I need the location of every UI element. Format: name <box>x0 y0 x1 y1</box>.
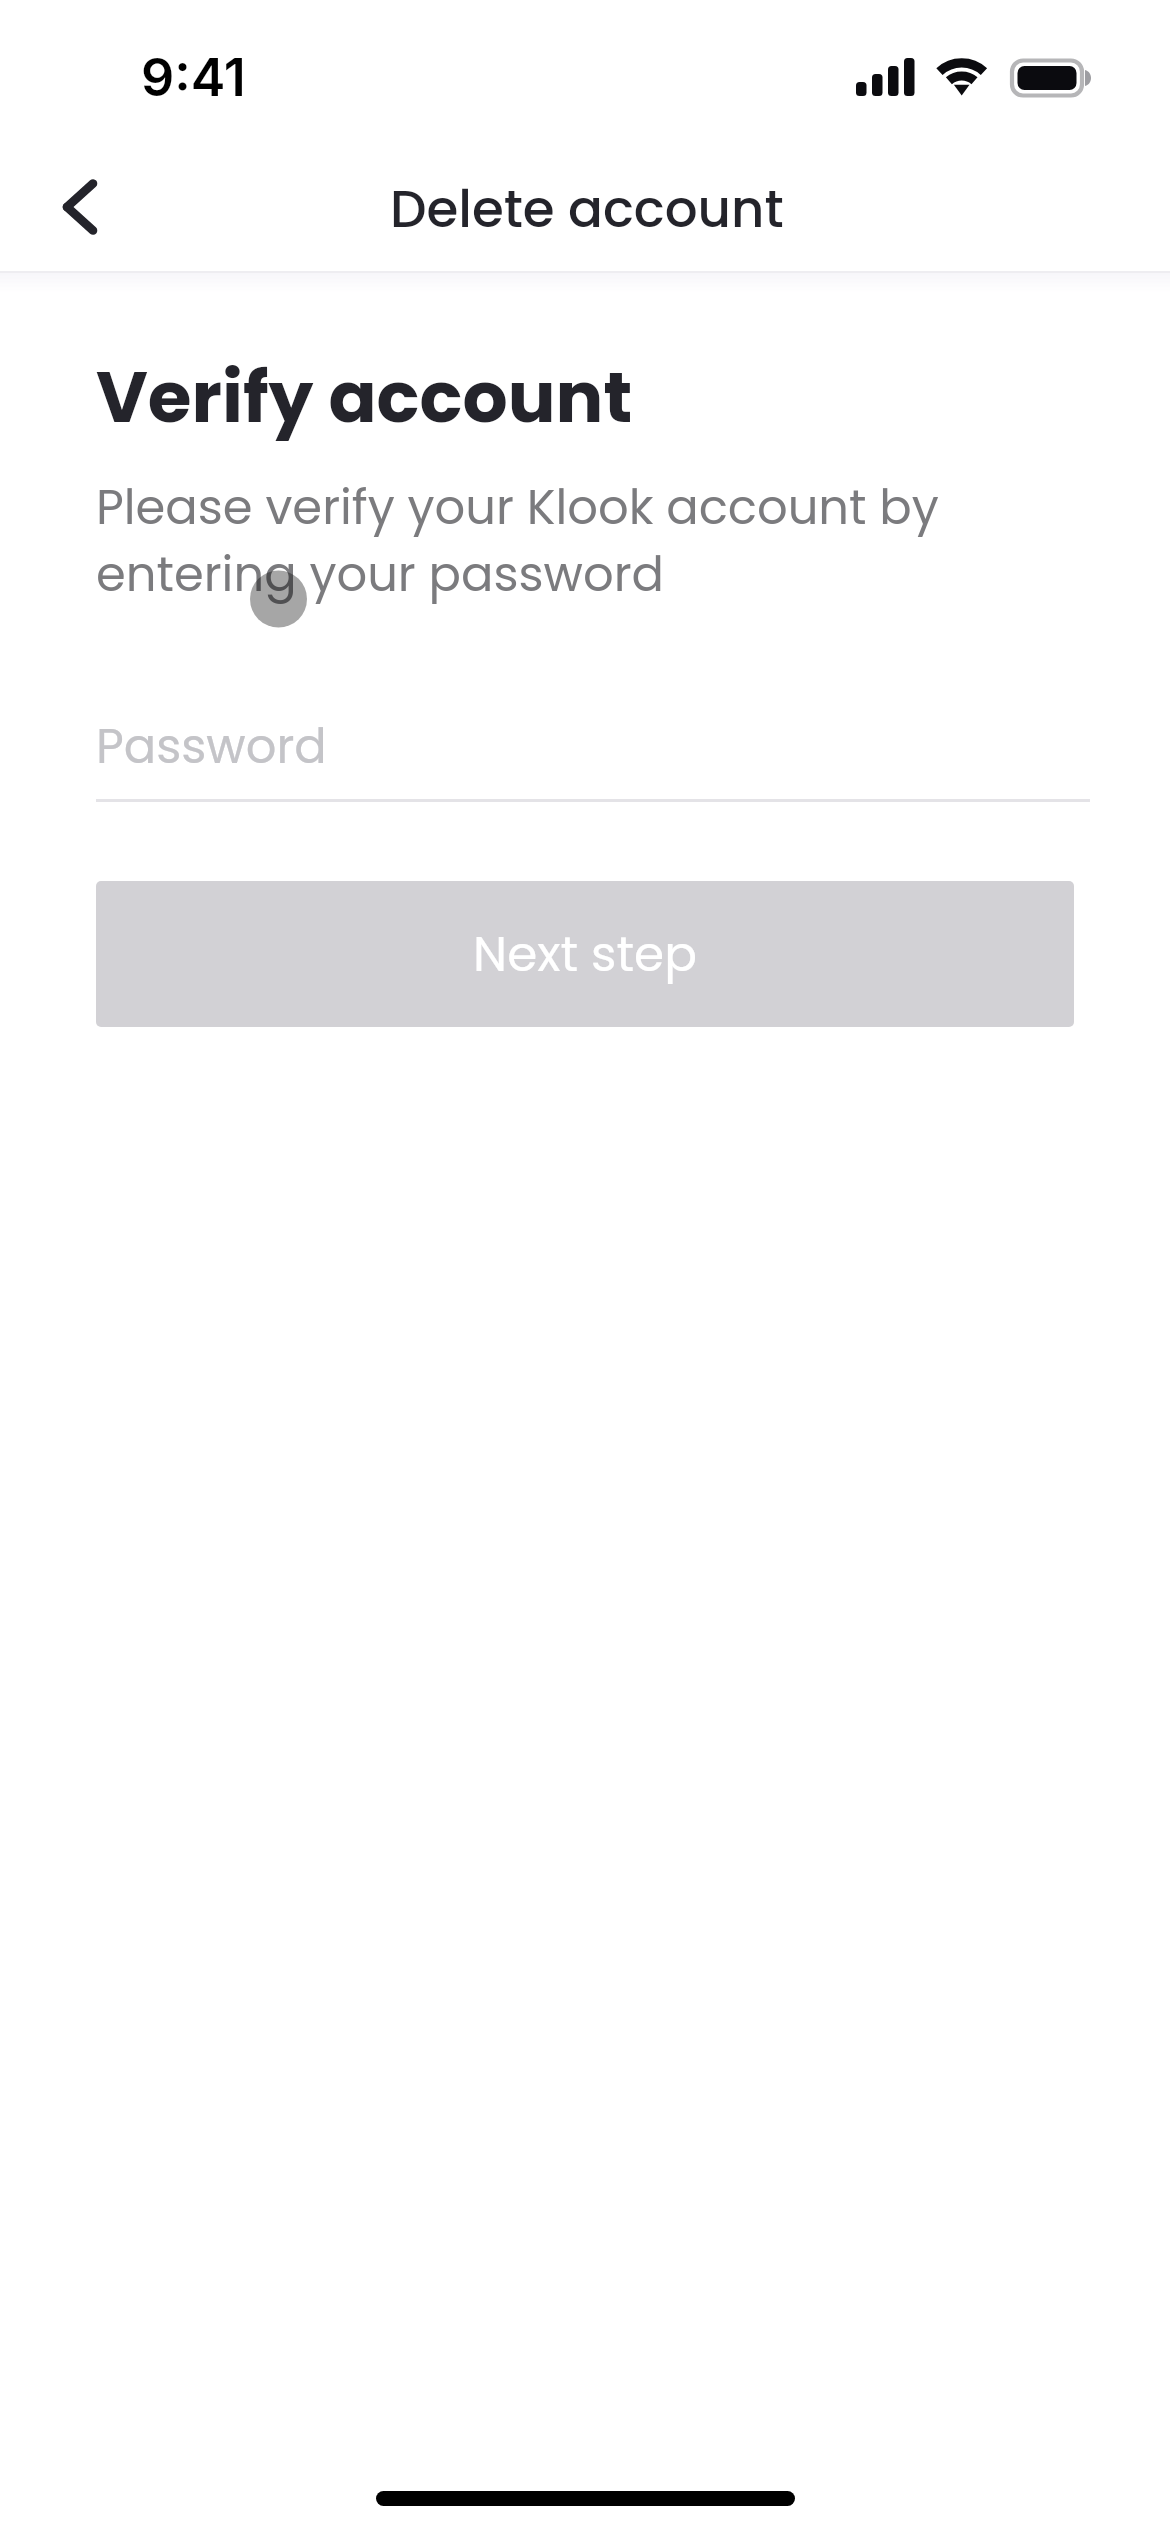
staticText: 9:41 <box>141 46 246 109</box>
staticText: Delete account <box>390 173 784 245</box>
staticText: Please verify your Klook account by ente… <box>96 474 1016 608</box>
button[interactable]: Back <box>6 140 132 266</box>
staticText: Next step <box>473 920 697 988</box>
button[interactable]: Next step <box>96 881 1074 1027</box>
staticText: Verify account <box>96 347 633 446</box>
button[interactable]: Password <box>96 714 1090 802</box>
staticText: Password <box>96 713 327 780</box>
